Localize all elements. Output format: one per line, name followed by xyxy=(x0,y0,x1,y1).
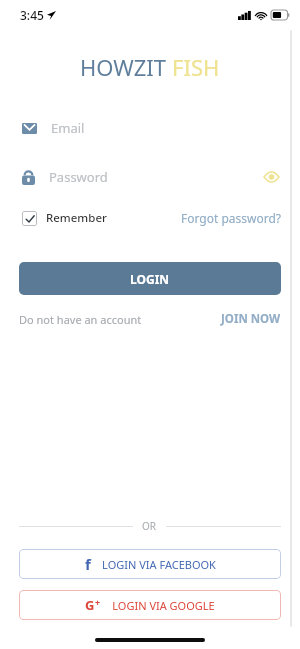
button[interactable]: Forgot password? xyxy=(181,210,282,226)
staticText: f xyxy=(85,554,91,574)
staticText: FISH xyxy=(172,52,220,82)
staticText: Do not have an account xyxy=(19,312,142,327)
button[interactable]: Email xyxy=(0,115,300,141)
staticText: OR xyxy=(142,519,157,533)
button[interactable]: f xyxy=(19,549,281,579)
staticText: LOGIN VIA FACEBOOK xyxy=(102,557,216,572)
staticText: HOWZIT xyxy=(80,52,172,82)
staticText: Forgot password? xyxy=(181,210,282,226)
staticText: JOIN NOW xyxy=(221,311,281,327)
button[interactable]: JOIN NOW xyxy=(221,311,281,327)
staticText: Remember xyxy=(46,210,107,226)
button[interactable]: Password xyxy=(0,164,300,190)
button[interactable]: G xyxy=(19,590,281,620)
staticText: Password xyxy=(49,168,108,186)
button[interactable]: Show password xyxy=(260,166,282,188)
staticText: 3:45 xyxy=(20,7,44,23)
staticText: LOGIN VIA GOOGLE xyxy=(112,598,215,613)
button[interactable]: LOGIN xyxy=(19,262,281,295)
staticText: + xyxy=(95,596,101,608)
staticText: G xyxy=(85,596,95,614)
staticText: LOGIN xyxy=(130,271,170,287)
button[interactable]: Remember xyxy=(22,210,107,226)
staticText: Email xyxy=(51,119,85,137)
